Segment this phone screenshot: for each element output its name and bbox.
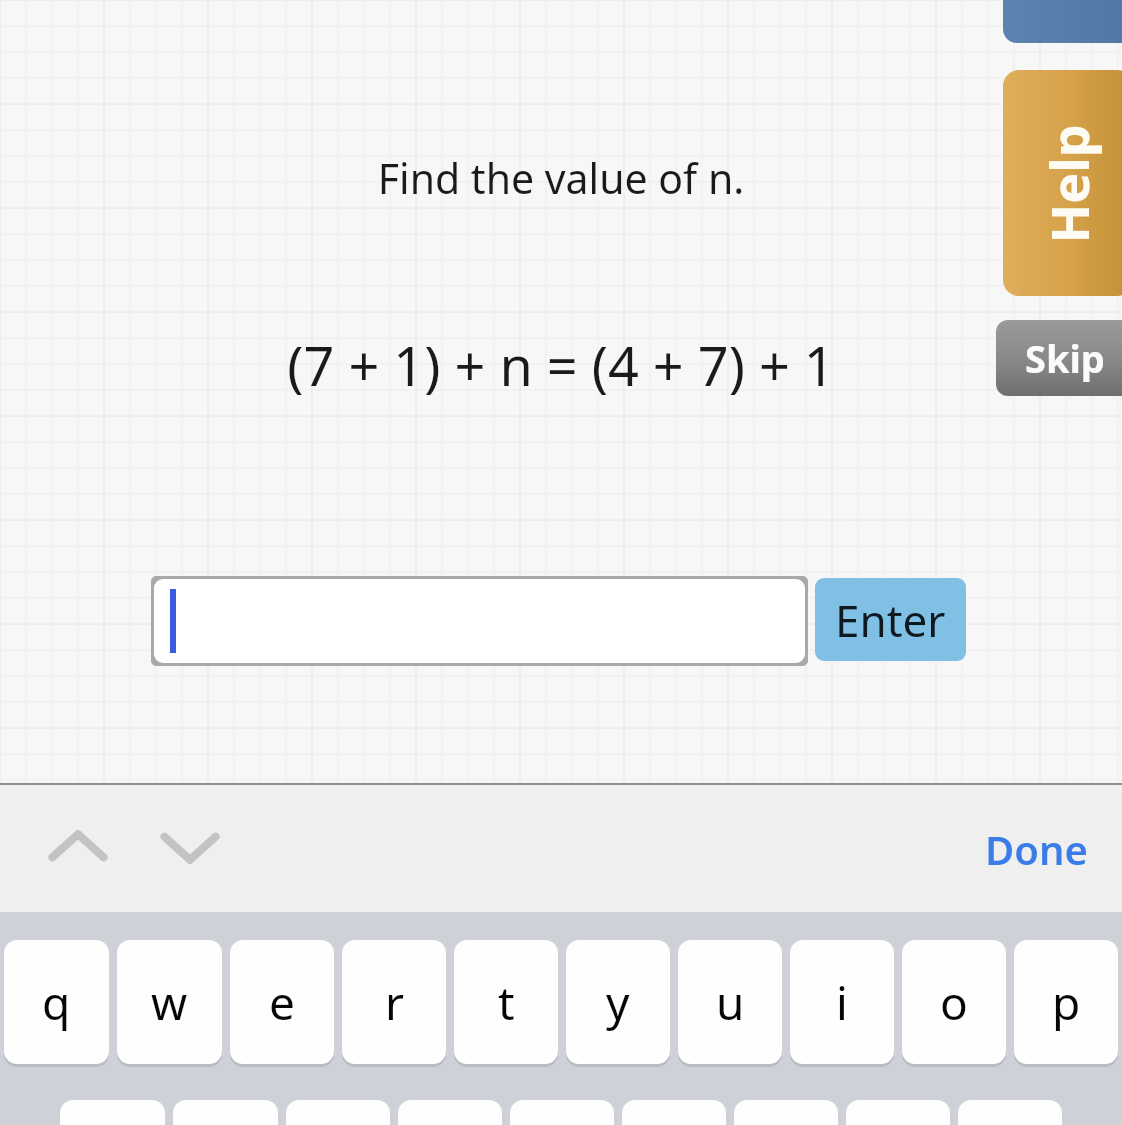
staticText: Help bbox=[1032, 123, 1103, 243]
button[interactable]: k bbox=[846, 1100, 950, 1125]
staticText: Enter bbox=[835, 590, 946, 650]
staticText: w bbox=[151, 971, 188, 1034]
staticText: i bbox=[836, 971, 848, 1034]
button[interactable]: f bbox=[398, 1100, 502, 1125]
button[interactable]: Skip bbox=[996, 320, 1122, 396]
button[interactable]: o bbox=[902, 940, 1006, 1064]
button[interactable]: w bbox=[117, 940, 222, 1064]
button[interactable]: d bbox=[286, 1100, 390, 1125]
button[interactable]: Help bbox=[1003, 70, 1122, 296]
button[interactable]: p bbox=[1014, 940, 1118, 1064]
button[interactable]: s bbox=[173, 1100, 278, 1125]
button[interactable]: Next field bbox=[142, 799, 238, 895]
button[interactable]: g bbox=[510, 1100, 614, 1125]
staticText: Find the value of n. bbox=[0, 150, 1122, 206]
button[interactable]: t bbox=[454, 940, 558, 1064]
button[interactable]: Previous field bbox=[30, 799, 126, 895]
button[interactable]: a bbox=[60, 1100, 165, 1125]
staticText: y bbox=[606, 971, 630, 1034]
button[interactable]: u bbox=[678, 940, 782, 1064]
button[interactable]: r bbox=[342, 940, 446, 1064]
button[interactable]: i bbox=[790, 940, 894, 1064]
button[interactable]: h bbox=[622, 1100, 726, 1125]
button[interactable]: l bbox=[958, 1100, 1062, 1125]
staticText: t bbox=[498, 971, 515, 1034]
button[interactable]: e bbox=[230, 940, 334, 1064]
button[interactable]: q bbox=[4, 940, 109, 1064]
button[interactable]: Done bbox=[985, 822, 1088, 876]
button[interactable] bbox=[151, 576, 808, 666]
button[interactable]: Menu bbox=[1003, 0, 1122, 43]
staticText: p bbox=[1052, 971, 1081, 1034]
staticText: Skip bbox=[1025, 332, 1105, 384]
staticText: e bbox=[269, 971, 295, 1034]
button[interactable]: j bbox=[734, 1100, 838, 1125]
staticText: Done bbox=[985, 822, 1088, 876]
staticText: o bbox=[940, 971, 968, 1034]
button[interactable]: y bbox=[566, 940, 670, 1064]
staticText: q bbox=[42, 971, 71, 1034]
staticText: r bbox=[385, 971, 404, 1034]
staticText: (7 + 1) + n = (4 + 7) + 1 bbox=[0, 328, 1122, 402]
button[interactable]: Enter bbox=[815, 578, 966, 661]
staticText: u bbox=[716, 971, 745, 1034]
